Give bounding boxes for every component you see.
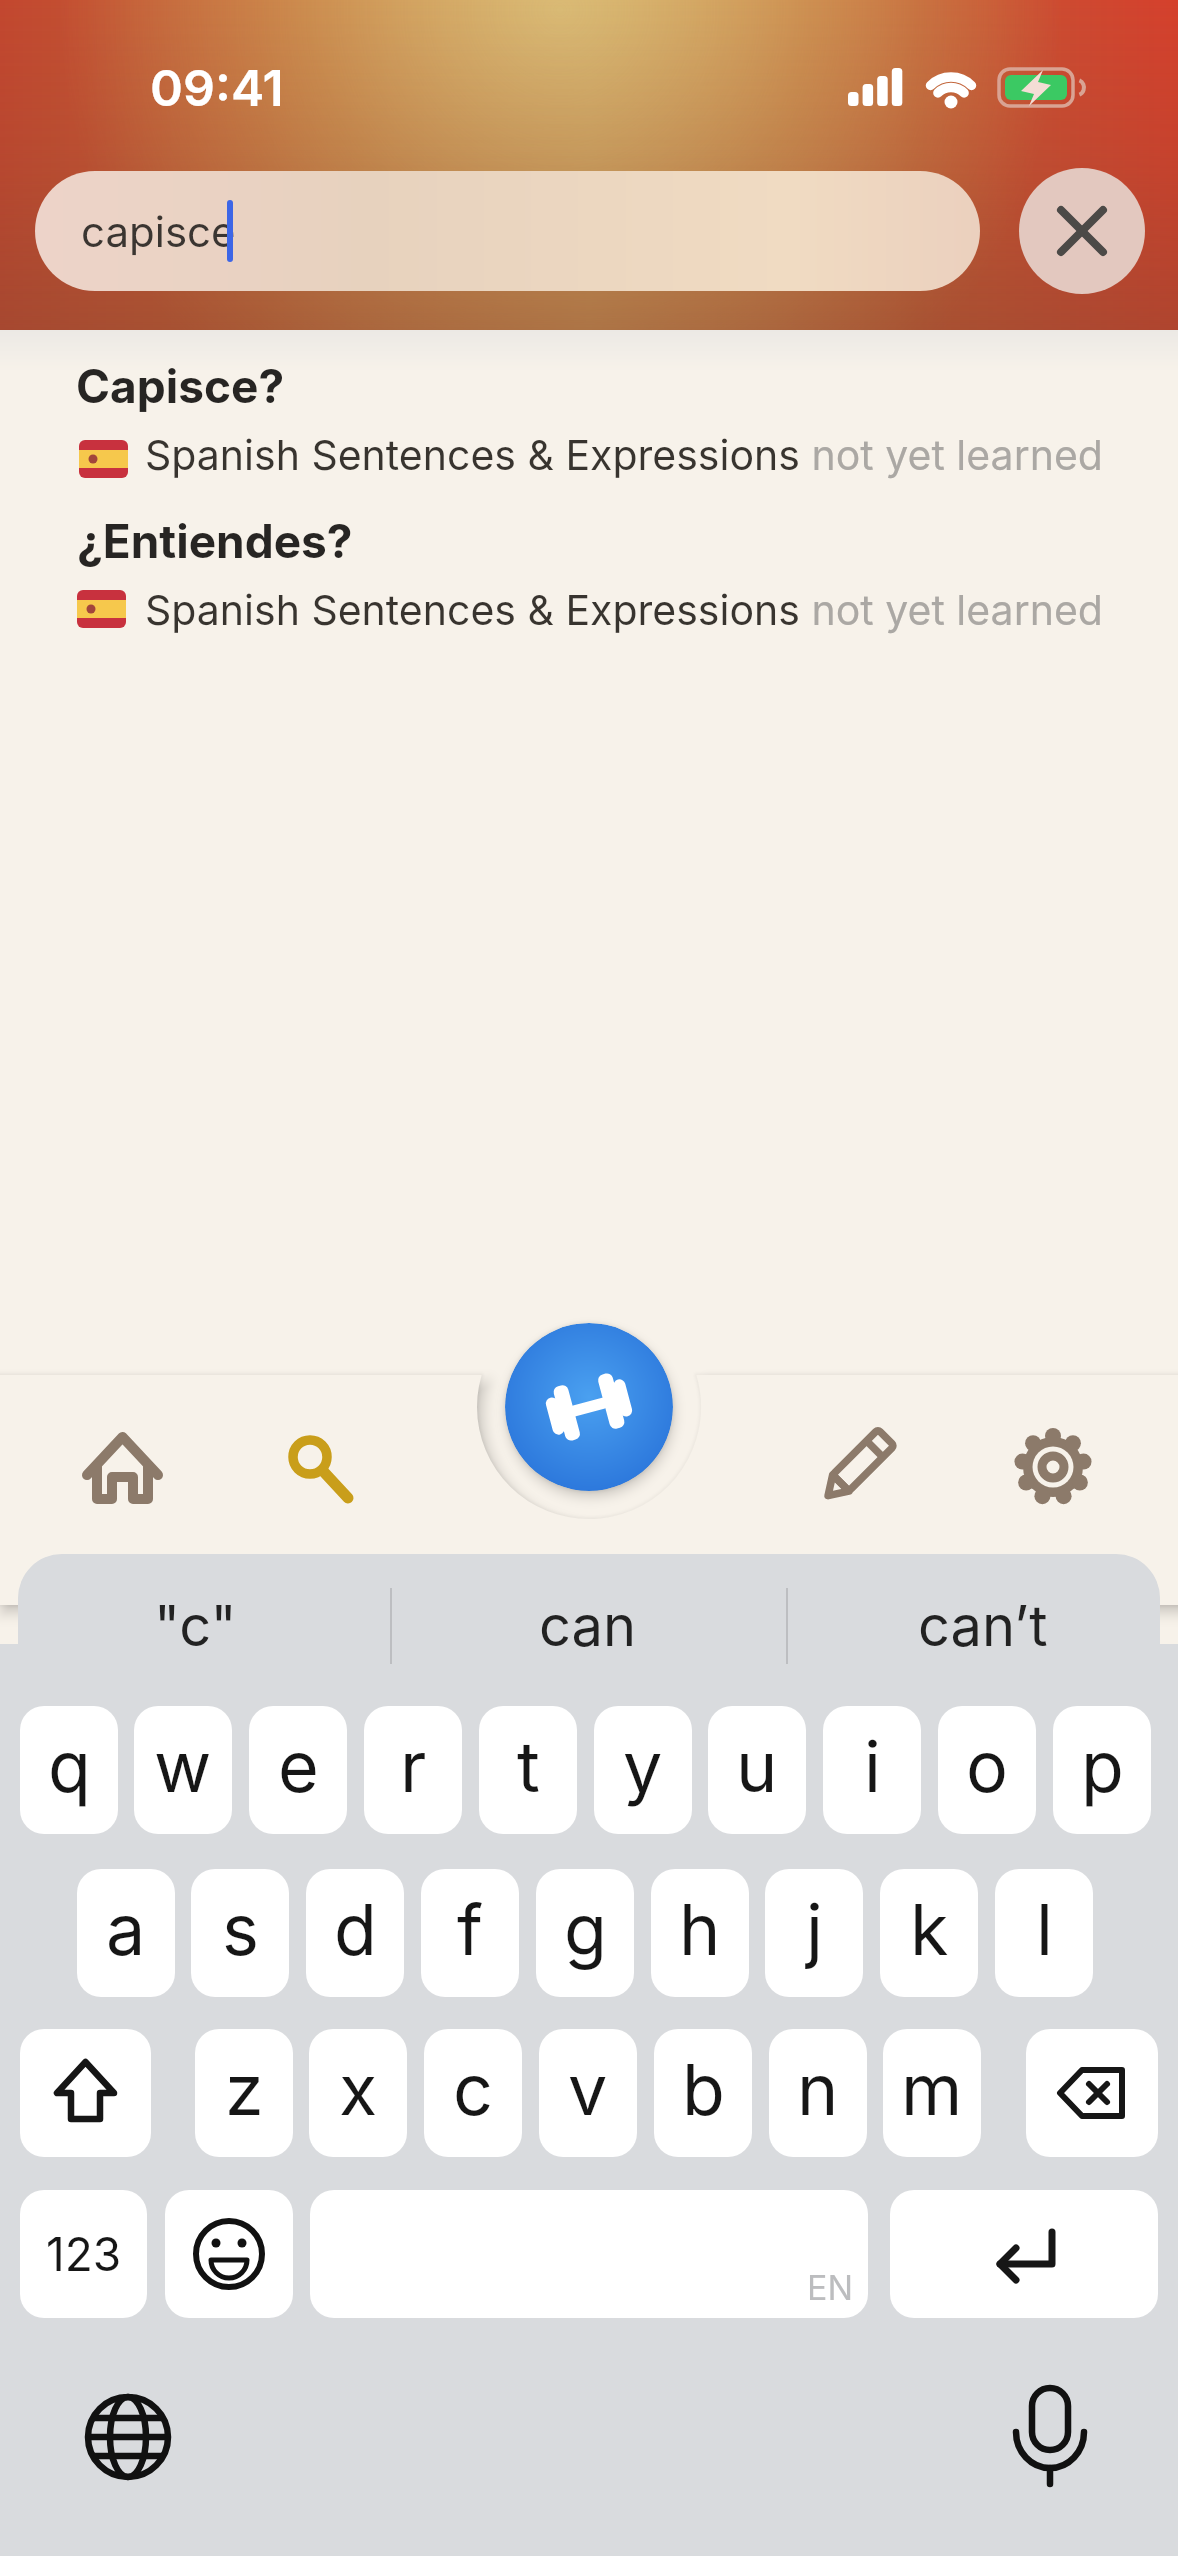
staticText: not yet learned bbox=[800, 585, 1103, 635]
staticText: i bbox=[864, 1724, 881, 1809]
button[interactable]: o bbox=[938, 1706, 1036, 1834]
button[interactable]: t bbox=[479, 1706, 577, 1834]
button[interactable]: i bbox=[823, 1706, 921, 1834]
staticText: ¿Entiendes? bbox=[77, 513, 353, 569]
button[interactable]: m bbox=[883, 2029, 981, 2157]
staticText: EN bbox=[807, 2267, 854, 2308]
staticText: not yet learned bbox=[800, 430, 1103, 480]
staticText: b bbox=[682, 2047, 725, 2132]
button[interactable]: j bbox=[765, 1869, 863, 1997]
staticText: q bbox=[48, 1724, 91, 1809]
button[interactable]: q bbox=[20, 1706, 118, 1834]
button[interactable]: c bbox=[424, 2029, 522, 2157]
button[interactable] bbox=[993, 1408, 1113, 1528]
staticText: s bbox=[222, 1887, 259, 1972]
button[interactable] bbox=[1026, 2029, 1158, 2157]
button[interactable] bbox=[165, 2190, 293, 2318]
button[interactable]: h bbox=[651, 1869, 749, 1997]
button[interactable] bbox=[505, 1323, 673, 1491]
staticText: k bbox=[910, 1887, 949, 1972]
button[interactable] bbox=[258, 1408, 378, 1528]
staticText: capisce bbox=[81, 206, 236, 257]
button[interactable]: s bbox=[191, 1869, 289, 1997]
staticText: y bbox=[623, 1724, 663, 1809]
staticText: m bbox=[901, 2047, 963, 2132]
button[interactable]: can bbox=[392, 1588, 784, 1664]
staticText: n bbox=[797, 2047, 839, 2132]
staticText: l bbox=[1036, 1887, 1053, 1972]
staticText: g bbox=[564, 1887, 607, 1972]
button[interactable]: v bbox=[539, 2029, 637, 2157]
staticText: p bbox=[1081, 1724, 1124, 1809]
staticText: f bbox=[457, 1887, 483, 1972]
button[interactable]: g bbox=[536, 1869, 634, 1997]
staticText: w bbox=[154, 1724, 212, 1809]
staticText: d bbox=[334, 1887, 377, 1972]
button[interactable]: w bbox=[134, 1706, 232, 1834]
staticText: Spanish Sentences & Expressions bbox=[145, 585, 800, 635]
button[interactable]: 123 bbox=[20, 2190, 147, 2318]
button[interactable]: l bbox=[995, 1869, 1093, 1997]
button[interactable] bbox=[890, 2190, 1158, 2318]
staticText: j bbox=[806, 1887, 823, 1972]
staticText: o bbox=[966, 1724, 1008, 1809]
button[interactable]: p bbox=[1053, 1706, 1151, 1834]
staticText: t bbox=[517, 1724, 540, 1809]
button[interactable] bbox=[68, 2377, 188, 2497]
button[interactable]: y bbox=[594, 1706, 692, 1834]
button[interactable]: k bbox=[880, 1869, 978, 1997]
button[interactable]: r bbox=[364, 1706, 462, 1834]
button[interactable] bbox=[62, 1408, 182, 1528]
button[interactable]: e bbox=[249, 1706, 347, 1834]
button[interactable]: a bbox=[77, 1869, 175, 1997]
staticText: h bbox=[679, 1887, 721, 1972]
staticText: a bbox=[106, 1887, 146, 1972]
staticText: 09:41 bbox=[150, 58, 284, 118]
staticText: c bbox=[453, 2047, 493, 2132]
button[interactable]: u bbox=[708, 1706, 806, 1834]
button[interactable]: "c" bbox=[0, 1588, 390, 1664]
button[interactable]: z bbox=[195, 2029, 293, 2157]
button[interactable]: d bbox=[306, 1869, 404, 1997]
staticText: u bbox=[736, 1724, 778, 1809]
staticText: can bbox=[539, 1592, 637, 1660]
staticText: 123 bbox=[46, 2226, 122, 2282]
staticText: x bbox=[339, 2047, 378, 2132]
staticText: "c" bbox=[154, 1592, 237, 1660]
staticText: can’t bbox=[918, 1592, 1048, 1660]
button[interactable]: f bbox=[421, 1869, 519, 1997]
button[interactable] bbox=[1019, 168, 1145, 294]
button[interactable]: n bbox=[769, 2029, 867, 2157]
staticText: v bbox=[568, 2047, 608, 2132]
button[interactable] bbox=[20, 2029, 151, 2157]
button[interactable] bbox=[797, 1408, 917, 1528]
staticText: z bbox=[225, 2047, 264, 2132]
button[interactable]: b bbox=[654, 2029, 752, 2157]
button[interactable]: EN bbox=[310, 2190, 868, 2318]
button[interactable] bbox=[40, 344, 1140, 490]
staticText: r bbox=[400, 1724, 427, 1809]
staticText: e bbox=[278, 1724, 319, 1809]
button[interactable]: x bbox=[309, 2029, 407, 2157]
button[interactable] bbox=[40, 498, 1140, 644]
staticText: Spanish Sentences & Expressions bbox=[145, 430, 800, 480]
button[interactable] bbox=[990, 2370, 1110, 2490]
button[interactable]: can’t bbox=[788, 1588, 1178, 1664]
staticText: Capisce? bbox=[76, 358, 285, 414]
button[interactable]: capisce bbox=[35, 171, 980, 291]
